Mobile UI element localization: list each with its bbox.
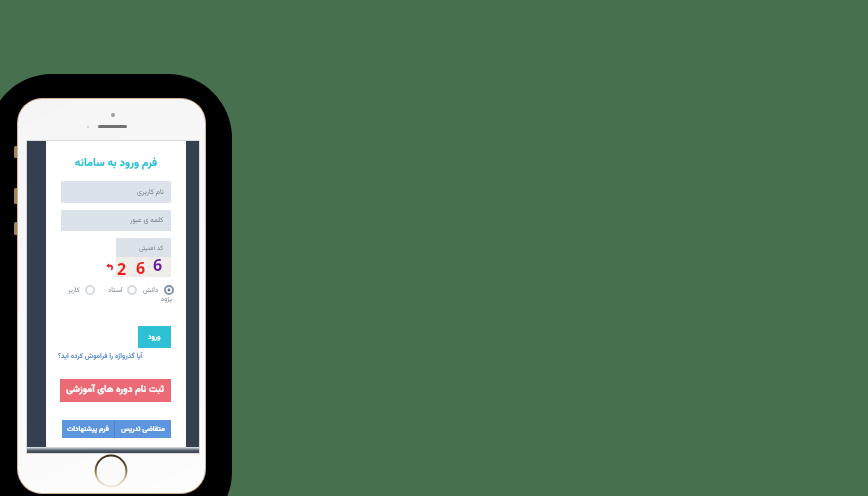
- button[interactable]: متقاضی تدریس: [115, 420, 171, 438]
- staticText: ثبت نام دوره های آموزشی: [66, 382, 165, 397]
- button[interactable]: کد امنیتی: [116, 238, 171, 257]
- staticText: 2: [117, 258, 127, 278]
- button[interactable]: ورود: [138, 326, 171, 348]
- button[interactable]: کلمه ی عبور: [61, 210, 171, 231]
- button[interactable]: ثبت نام دوره های آموزشی: [60, 379, 171, 402]
- button[interactable]: Refresh captcha: [106, 262, 115, 271]
- staticText: فرم پیشنهادات: [67, 424, 109, 435]
- staticText: فرم ورود به سامانه: [46, 155, 186, 172]
- staticText: آیا گذرواژه را فراموش کرده اید؟: [58, 351, 143, 362]
- staticText: 6: [153, 254, 163, 274]
- staticText: کاربر: [68, 285, 80, 296]
- staticText: کد امنیتی: [139, 243, 164, 253]
- button[interactable]: دانش: [141, 283, 172, 304]
- button[interactable]: نام کاربری: [61, 181, 171, 203]
- staticText: نام کاربری: [137, 187, 164, 198]
- staticText: دانش: [143, 285, 159, 296]
- staticText: ورود: [148, 332, 161, 343]
- staticText: استاد: [108, 285, 123, 296]
- staticText: کلمه ی عبور: [130, 215, 164, 226]
- staticText: 6: [136, 257, 146, 277]
- button[interactable]: استاد: [106, 283, 138, 295]
- button[interactable]: کاربر: [65, 283, 96, 295]
- staticText: پژوه: [161, 294, 173, 305]
- staticText: متقاضی تدریس: [121, 424, 165, 435]
- button[interactable]: فرم پیشنهادات: [62, 420, 114, 438]
- button[interactable]: آیا گذرواژه را فراموش کرده اید؟: [58, 350, 143, 362]
